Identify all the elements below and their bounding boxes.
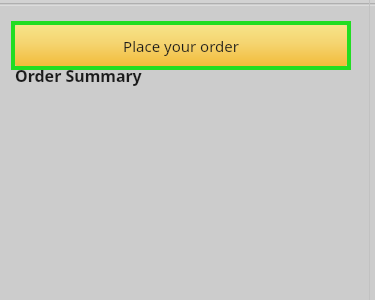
staticText: Order Summary xyxy=(15,65,142,87)
button[interactable]: Place your order xyxy=(15,25,347,66)
staticText: Place your order xyxy=(123,36,239,56)
